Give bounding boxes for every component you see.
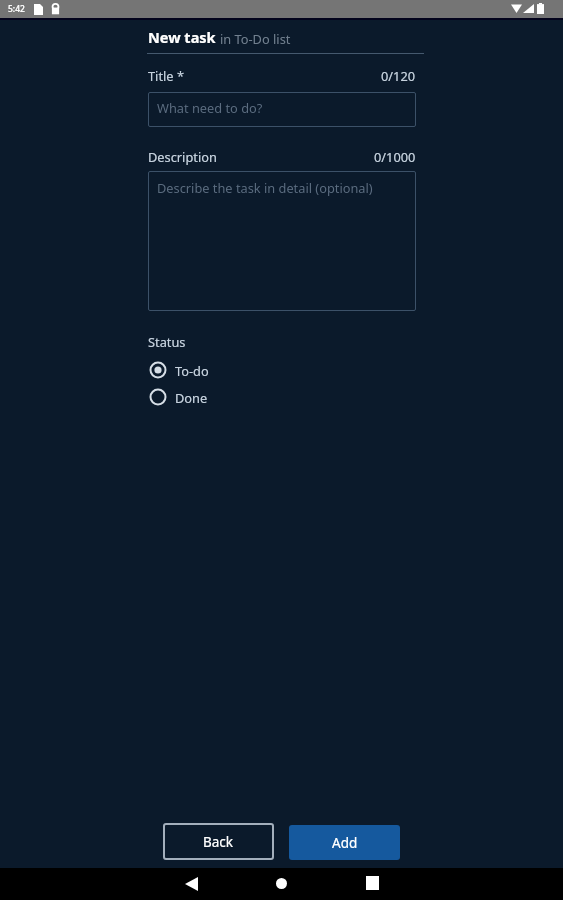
staticText: What need to do? [157, 99, 263, 116]
other: Mobile signal [523, 4, 534, 13]
staticText: 0/120 [381, 67, 416, 84]
staticText: Add [332, 834, 358, 852]
staticText: Done [175, 389, 208, 406]
other: Wi-Fi [511, 4, 522, 13]
other: Secure [51, 3, 60, 15]
button[interactable]: Back [163, 823, 274, 860]
staticText: 0/1000 [374, 148, 416, 165]
button[interactable]: Describe the task in detail (optional) [148, 171, 416, 311]
staticText: Back [203, 833, 234, 851]
other: Battery [537, 3, 544, 14]
staticText: Title * [148, 67, 184, 84]
button[interactable]: To-do [149, 361, 209, 379]
staticText: in To-Do list [220, 30, 291, 47]
button[interactable]: Recent apps [354, 867, 390, 899]
staticText: Status [148, 333, 186, 350]
staticText: Describe the task in detail (optional) [157, 179, 373, 196]
button[interactable]: Home [263, 867, 299, 899]
other: Notes [34, 4, 43, 15]
button[interactable]: Back [173, 868, 209, 900]
button[interactable]: Done [149, 388, 208, 406]
staticText: Description [148, 148, 217, 165]
button[interactable]: Add [289, 825, 400, 860]
staticText: New task [148, 27, 216, 47]
staticText: To-do [175, 362, 209, 379]
staticText: 5:42 [8, 3, 25, 15]
button[interactable]: What need to do? [148, 92, 416, 127]
